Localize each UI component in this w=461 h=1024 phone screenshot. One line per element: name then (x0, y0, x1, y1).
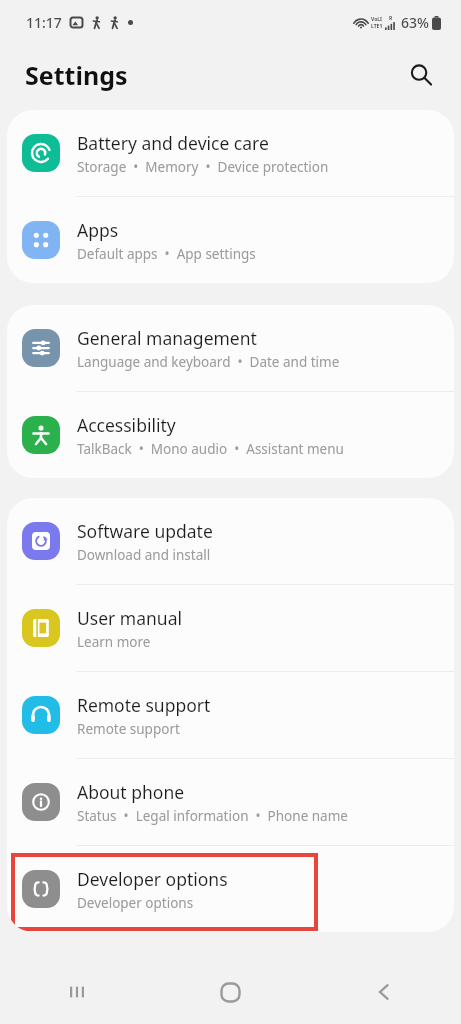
staticText: Download and install (77, 546, 211, 564)
button[interactable]: Back (357, 965, 411, 1019)
button[interactable]: Remote support (7, 672, 454, 758)
button[interactable]: Home (203, 965, 257, 1019)
staticText: Settings (25, 58, 128, 92)
button[interactable]: Recents (50, 965, 104, 1019)
staticText: Language and keyboard • Date and time (77, 353, 340, 371)
staticText: Developer options (77, 894, 194, 912)
staticText: 63% (401, 13, 429, 32)
staticText: Apps (77, 218, 119, 242)
staticText: General management (77, 326, 257, 350)
staticText: Accessibility (77, 413, 176, 437)
staticText: 11:17 (26, 13, 62, 32)
button[interactable]: About phone (7, 759, 454, 845)
staticText: R (389, 15, 393, 22)
staticText: Battery and device care (77, 131, 269, 155)
staticText: LTE1 (371, 23, 383, 30)
button[interactable]: Search (399, 53, 443, 97)
staticText: Learn more (77, 633, 151, 651)
staticText: Remote support (77, 720, 180, 738)
staticText: Default apps • App settings (77, 245, 256, 263)
staticText: User manual (77, 606, 182, 630)
button[interactable]: Apps (7, 197, 454, 283)
staticText: Developer options (77, 867, 228, 891)
staticText: Status • Legal information • Phone name (77, 807, 348, 825)
staticText: Storage • Memory • Device protection (77, 158, 329, 176)
button[interactable]: Software update (7, 498, 454, 584)
staticText: Remote support (77, 693, 211, 717)
staticText: VoLI (371, 16, 383, 23)
button[interactable]: User manual (7, 585, 454, 671)
staticText: TalkBack • Mono audio • Assistant menu (77, 440, 344, 458)
staticText: Software update (77, 519, 213, 543)
staticText: About phone (77, 780, 185, 804)
button[interactable]: Developer options (7, 846, 454, 932)
button[interactable]: Battery and device care (7, 110, 454, 196)
button[interactable]: General management (7, 305, 454, 391)
button[interactable]: Accessibility (7, 392, 454, 478)
